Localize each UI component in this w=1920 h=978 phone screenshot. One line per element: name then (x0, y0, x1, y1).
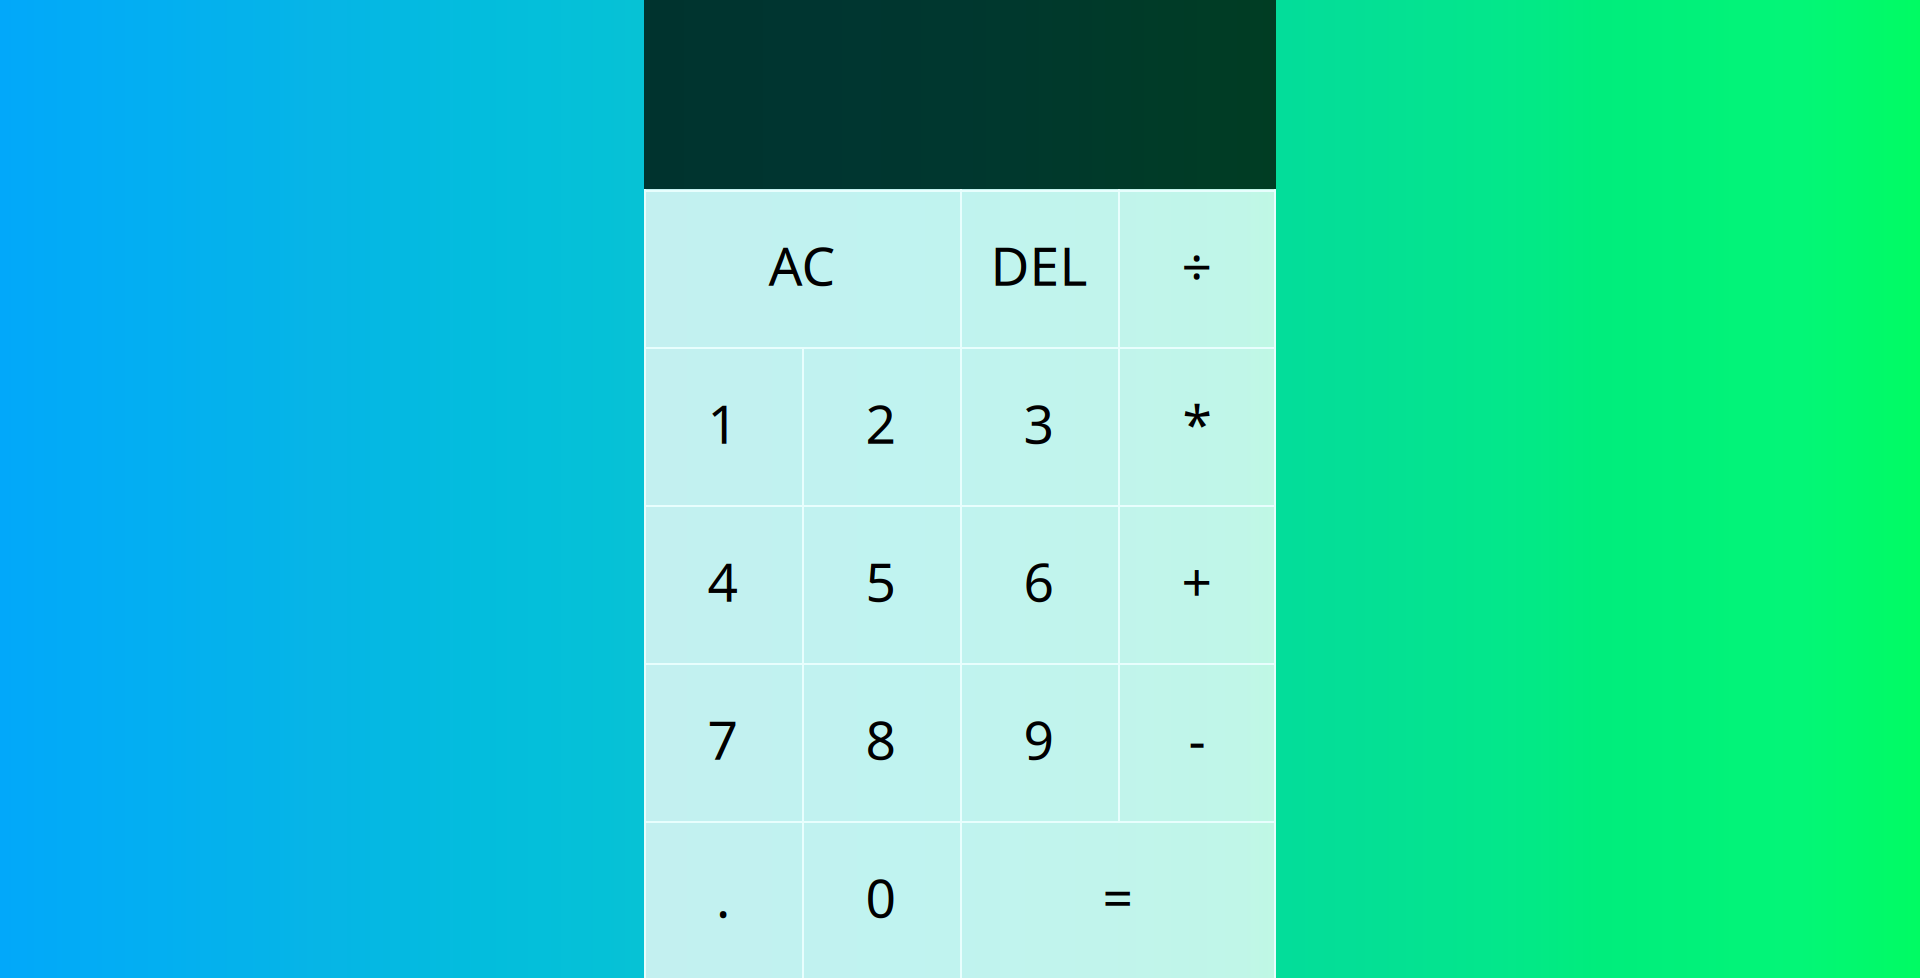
staticText: 2 (865, 388, 896, 458)
staticText: 9 (1023, 704, 1054, 774)
button[interactable]: Divide (1118, 189, 1276, 347)
staticText: DEL (990, 230, 1087, 300)
button[interactable]: 0 (802, 821, 960, 978)
button[interactable]: 8 (802, 663, 960, 821)
button[interactable]: All clear (644, 189, 960, 347)
staticText: 3 (1023, 388, 1054, 458)
staticText: 0 (865, 862, 896, 932)
button[interactable]: 3 (960, 347, 1118, 505)
button[interactable]: 1 (644, 347, 802, 505)
button[interactable]: 6 (960, 505, 1118, 663)
staticText: * (1182, 388, 1211, 458)
button[interactable]: 9 (960, 663, 1118, 821)
staticText: 7 (707, 704, 738, 774)
button[interactable]: Decimal point (644, 821, 802, 978)
staticText: = (1102, 862, 1133, 932)
button[interactable]: 7 (644, 663, 802, 821)
button[interactable]: 4 (644, 505, 802, 663)
button[interactable]: Multiply (1118, 347, 1276, 505)
staticText: - (1188, 704, 1205, 774)
staticText: 4 (707, 546, 738, 616)
staticText: ÷ (1181, 230, 1212, 300)
staticText: AC (768, 230, 835, 300)
staticText: 5 (865, 546, 896, 616)
staticText: 6 (1023, 546, 1054, 616)
staticText: 1 (707, 388, 738, 458)
button[interactable]: Add (1118, 505, 1276, 663)
staticText: 8 (865, 704, 896, 774)
button[interactable]: 5 (802, 505, 960, 663)
button[interactable]: Subtract (1118, 663, 1276, 821)
button[interactable]: Delete (960, 189, 1118, 347)
button[interactable]: 2 (802, 347, 960, 505)
staticText: + (1181, 546, 1212, 616)
staticText: . (716, 862, 730, 932)
button[interactable]: Equals (960, 821, 1276, 978)
